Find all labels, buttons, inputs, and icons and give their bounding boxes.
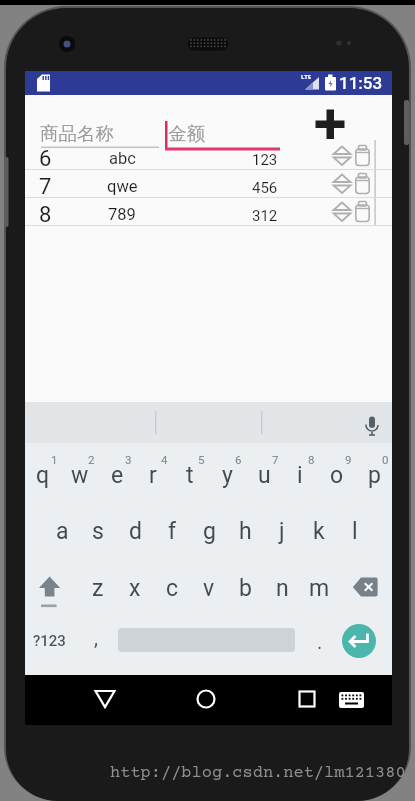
button[interactable]: n	[264, 569, 300, 607]
button[interactable]	[195, 688, 217, 710]
staticText: 2	[88, 453, 95, 466]
staticText: e	[111, 462, 124, 489]
button[interactable]	[333, 202, 351, 222]
staticText: m	[309, 575, 330, 602]
staticText: k	[313, 518, 325, 545]
button[interactable]: 7	[25, 170, 392, 198]
staticText: y	[222, 462, 233, 489]
button[interactable]: b	[227, 569, 263, 607]
button[interactable]: e	[99, 456, 135, 494]
staticText: 金额	[168, 122, 205, 145]
staticText: 789	[108, 205, 136, 224]
button[interactable]	[355, 201, 371, 222]
staticText: 1	[51, 453, 58, 466]
button[interactable]: ?123	[27, 625, 71, 657]
button[interactable]: f	[154, 512, 190, 550]
button[interactable]: h	[227, 512, 263, 550]
staticText: g	[203, 518, 216, 545]
button[interactable]	[34, 575, 64, 609]
staticText: s	[92, 518, 104, 545]
staticText: i	[297, 462, 303, 489]
staticText: 5	[198, 453, 205, 466]
button[interactable]	[94, 688, 116, 710]
staticText: u	[258, 462, 271, 489]
staticText: LTE	[301, 73, 312, 81]
button[interactable]: q	[25, 456, 61, 494]
staticText: 4	[161, 453, 168, 466]
staticText: 6	[235, 453, 242, 466]
staticText: v	[203, 575, 215, 602]
button[interactable]: v	[191, 569, 227, 607]
button[interactable]: p	[356, 456, 392, 494]
staticText: 9	[345, 453, 352, 466]
staticText: f	[168, 518, 176, 545]
staticText: c	[166, 575, 179, 602]
button[interactable]	[355, 145, 371, 166]
staticText: j	[279, 518, 285, 545]
staticText: .	[317, 630, 323, 653]
staticText: 11:53	[339, 73, 383, 93]
staticText: qwe	[107, 177, 138, 196]
staticText: 312	[252, 207, 278, 225]
button[interactable]: 6	[25, 142, 392, 170]
staticText: w	[71, 462, 89, 489]
staticText: d	[129, 518, 142, 545]
staticText: 7	[272, 453, 279, 466]
staticText: 商品名称	[40, 122, 114, 145]
button[interactable]: g	[191, 512, 227, 550]
button[interactable]: u	[246, 456, 282, 494]
button[interactable]: i	[282, 456, 318, 494]
button[interactable]: j	[264, 512, 300, 550]
button[interactable]	[339, 692, 364, 708]
button[interactable]: z	[80, 569, 116, 607]
button[interactable]: 8	[25, 198, 392, 226]
button[interactable]: d	[117, 512, 153, 550]
button[interactable]: r	[135, 456, 171, 494]
staticText: z	[92, 575, 104, 602]
staticText: 456	[252, 179, 278, 197]
button[interactable]	[333, 174, 351, 194]
staticText: a	[56, 518, 69, 545]
button[interactable]	[353, 577, 379, 598]
button[interactable]	[296, 688, 318, 710]
button[interactable]: t	[172, 456, 208, 494]
staticText: 123	[252, 151, 278, 169]
staticText: n	[276, 575, 289, 602]
staticText: q	[36, 462, 50, 489]
button[interactable]: k	[301, 512, 337, 550]
button[interactable]: y	[209, 456, 245, 494]
staticText: 0	[382, 453, 389, 466]
staticText: b	[239, 575, 252, 602]
staticText: x	[129, 575, 141, 602]
staticText: abc	[109, 149, 136, 168]
button[interactable]: a	[44, 512, 80, 550]
button[interactable]	[342, 624, 376, 658]
button[interactable]: x	[117, 569, 153, 607]
button[interactable]: ,	[83, 621, 109, 653]
button[interactable]: l	[337, 512, 373, 550]
staticText: l	[352, 518, 358, 545]
button[interactable]: o	[319, 456, 355, 494]
staticText: r	[149, 462, 157, 489]
button[interactable]: c	[154, 569, 190, 607]
button[interactable]	[333, 146, 351, 166]
staticText: 7	[39, 174, 52, 200]
staticText: 8	[39, 202, 52, 228]
staticText: h	[239, 518, 252, 545]
button[interactable]: .	[310, 625, 330, 657]
button[interactable]: m	[301, 569, 337, 607]
staticText: 8	[308, 453, 315, 466]
button[interactable]: s	[80, 512, 116, 550]
button[interactable]	[165, 115, 283, 149]
staticText: 6	[39, 146, 52, 172]
staticText: o	[330, 462, 344, 489]
staticText: ?123	[33, 632, 66, 650]
staticText: 3	[125, 453, 132, 466]
button[interactable]: w	[62, 456, 98, 494]
button[interactable]	[41, 115, 159, 149]
button[interactable]	[313, 107, 347, 141]
staticText: p	[368, 462, 381, 489]
staticText: http://blog.csdn.net/lm121380	[110, 764, 406, 783]
button[interactable]	[355, 173, 371, 194]
